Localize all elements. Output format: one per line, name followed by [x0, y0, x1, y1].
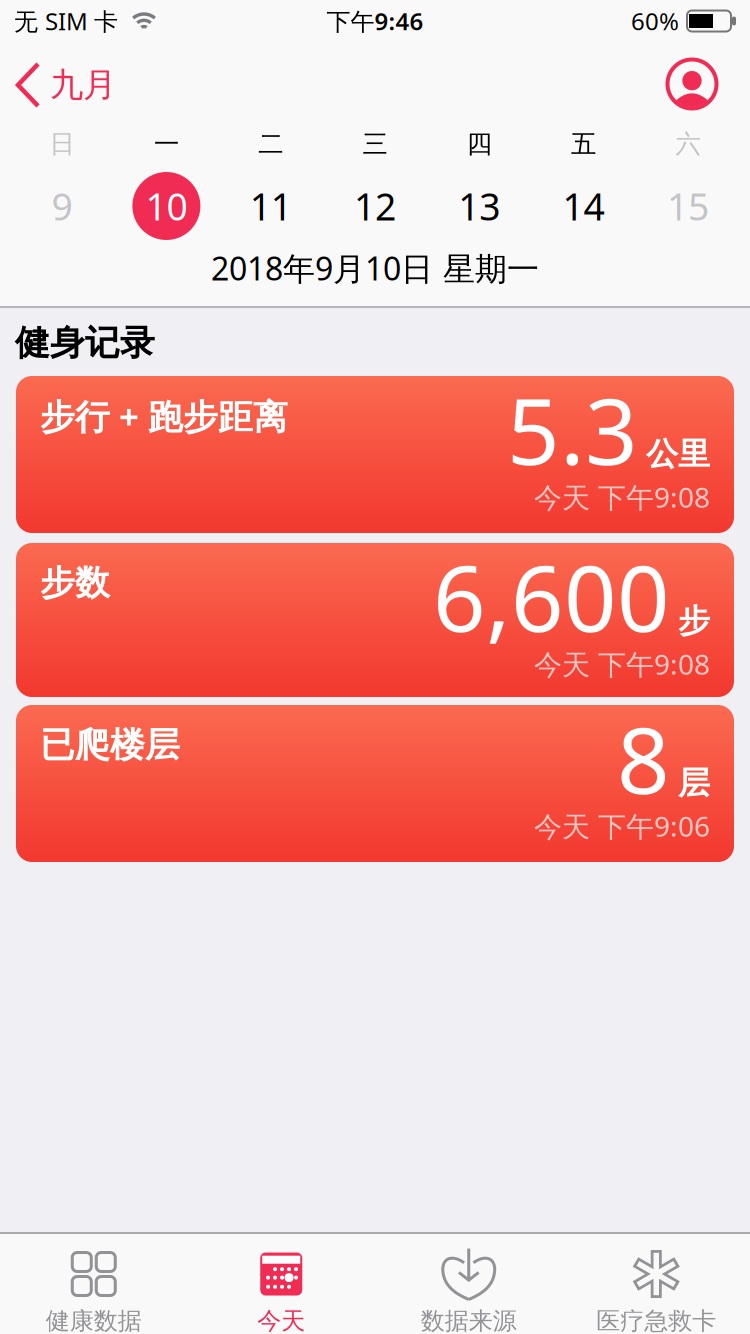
- button[interactable]: 15: [648, 171, 728, 241]
- staticText: 12: [354, 181, 396, 231]
- staticText: 四: [467, 128, 492, 159]
- staticText: 今天 下午9:08: [534, 645, 710, 683]
- staticText: 二: [258, 128, 283, 159]
- staticText: 11: [250, 181, 292, 231]
- staticText: 今天: [257, 1306, 305, 1334]
- staticText: 13: [458, 181, 500, 231]
- staticText: 步数: [40, 562, 110, 604]
- staticText: 60%: [631, 5, 679, 37]
- button[interactable]: 数据来源: [375, 1232, 562, 1334]
- staticText: 今天 下午9:06: [534, 807, 710, 845]
- staticText: 6,600: [433, 535, 670, 657]
- staticText: 下午9:46: [326, 5, 423, 37]
- staticText: 层: [678, 763, 710, 803]
- button[interactable]: 步数: [16, 543, 734, 697]
- button[interactable]: 今天: [188, 1232, 375, 1334]
- button[interactable]: 健康数据: [0, 1232, 187, 1334]
- staticText: 公里: [646, 434, 710, 474]
- staticText: 五: [571, 128, 596, 159]
- button[interactable]: 九月: [16, 60, 116, 110]
- button[interactable]: 已爬楼层: [16, 705, 734, 862]
- button[interactable]: 10: [126, 171, 206, 241]
- staticText: 今天 下午9:08: [534, 478, 710, 516]
- staticText: 健康数据: [46, 1306, 142, 1334]
- button[interactable]: 11: [231, 171, 311, 241]
- staticText: 9: [52, 181, 73, 231]
- staticText: 10: [145, 181, 187, 231]
- staticText: 健身记录: [15, 322, 155, 364]
- staticText: 14: [563, 181, 605, 231]
- staticText: 九月: [50, 64, 116, 105]
- staticText: 2018年9月10日 星期一: [211, 247, 539, 289]
- button[interactable]: 14: [544, 171, 624, 241]
- staticText: 三: [362, 128, 387, 159]
- button[interactable]: [667, 59, 717, 109]
- staticText: 医疗急救卡: [596, 1306, 716, 1334]
- button[interactable]: 9: [22, 171, 102, 241]
- staticText: 无 SIM 卡: [14, 5, 118, 37]
- staticText: 数据来源: [421, 1306, 517, 1334]
- staticText: 一: [154, 128, 179, 159]
- staticText: 8: [617, 697, 670, 819]
- button[interactable]: 医疗急救卡: [563, 1232, 750, 1334]
- staticText: 已爬楼层: [40, 724, 180, 766]
- staticText: 日: [50, 128, 75, 159]
- staticText: 15: [667, 181, 709, 231]
- button[interactable]: 13: [439, 171, 519, 241]
- button[interactable]: 步行 + 跑步距离: [16, 376, 734, 533]
- staticText: 六: [675, 128, 700, 159]
- staticText: 5.3: [507, 368, 638, 490]
- button[interactable]: 12: [335, 171, 415, 241]
- staticText: 步行 + 跑步距离: [40, 393, 288, 439]
- staticText: 步: [678, 601, 710, 641]
